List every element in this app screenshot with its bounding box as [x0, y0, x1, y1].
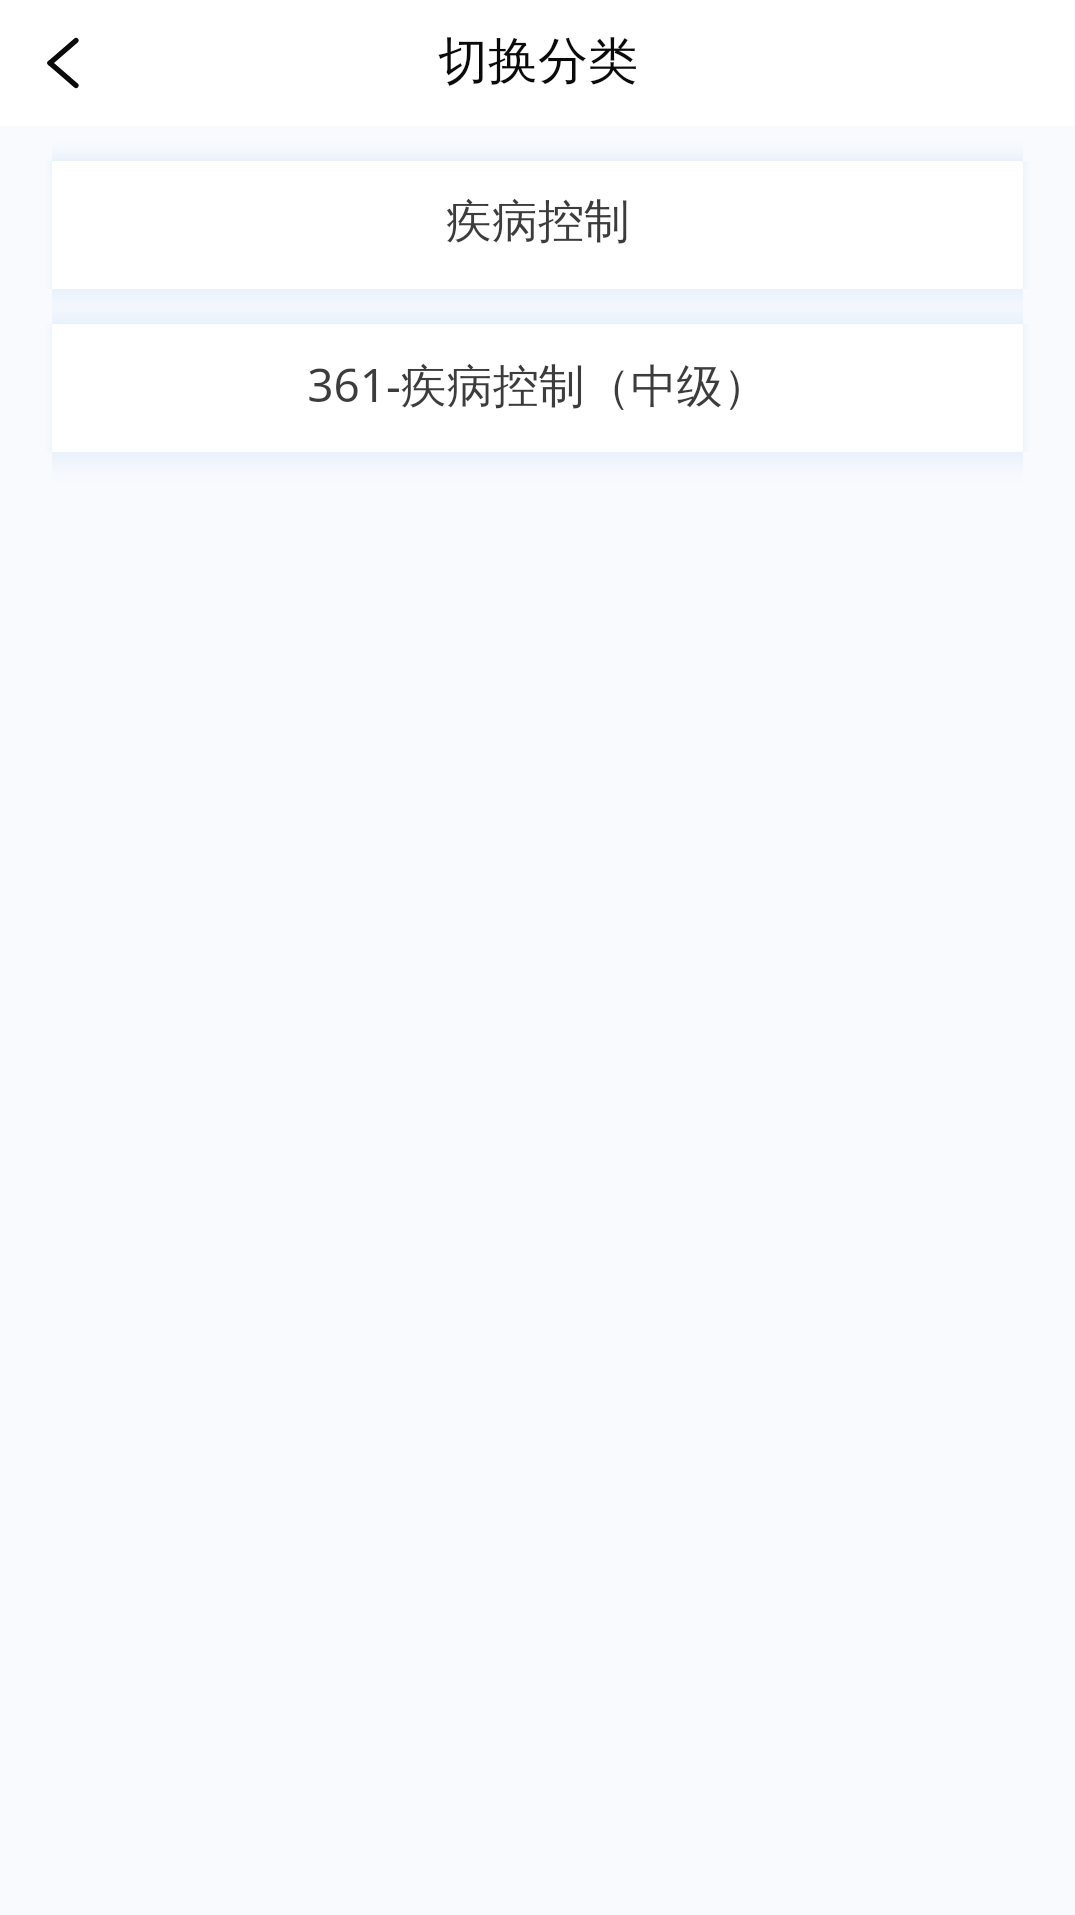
staticText: 361-疾病控制（中级）: [307, 353, 769, 416]
button[interactable]: Back: [15, 15, 111, 111]
staticText: 切换分类: [438, 30, 638, 93]
staticText: 疾病控制: [446, 193, 630, 251]
button[interactable]: 疾病控制: [52, 161, 1023, 289]
button[interactable]: 361-疾病控制（中级）: [52, 324, 1023, 452]
